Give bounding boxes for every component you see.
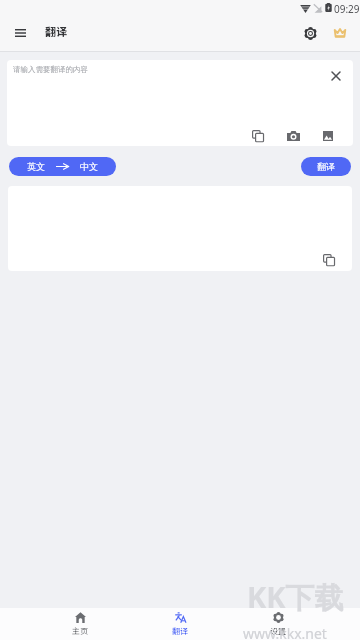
button[interactable]: Settings bbox=[297, 20, 323, 46]
staticText: 请输入需要翻译的内容 bbox=[13, 65, 88, 74]
button[interactable]: Copy result bbox=[317, 248, 341, 271]
button[interactable]: Camera bbox=[281, 124, 305, 146]
staticText: 英文 bbox=[27, 161, 45, 172]
staticText: 翻译 bbox=[317, 161, 335, 172]
staticText: 主页 bbox=[72, 625, 88, 637]
staticText: 翻译 bbox=[172, 625, 188, 637]
button[interactable]: Menu bbox=[7, 20, 33, 46]
staticText: 中文 bbox=[80, 161, 98, 172]
button[interactable]: Gallery bbox=[316, 124, 340, 146]
button[interactable]: 设置 bbox=[254, 608, 302, 640]
staticText: 09:29 bbox=[334, 2, 360, 16]
staticText: 设置 bbox=[270, 625, 286, 637]
button[interactable]: 翻译 bbox=[156, 608, 204, 640]
button[interactable]: Premium bbox=[327, 20, 353, 46]
button[interactable]: 主页 bbox=[56, 608, 104, 640]
button[interactable]: 英文 bbox=[9, 157, 116, 176]
staticText: KK下载 bbox=[247, 577, 344, 617]
button[interactable]: Clear bbox=[324, 64, 348, 88]
button[interactable]: 翻译 bbox=[301, 157, 351, 176]
staticText: 翻译 bbox=[45, 23, 67, 39]
button[interactable]: Copy bbox=[246, 124, 270, 146]
staticText: www.kkx.net bbox=[243, 624, 327, 640]
